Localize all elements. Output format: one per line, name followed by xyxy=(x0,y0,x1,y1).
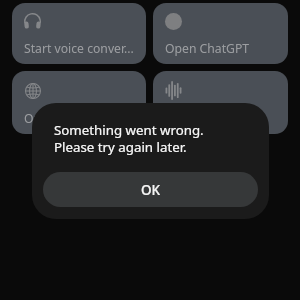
other: Headphones xyxy=(24,13,41,30)
other: App icon xyxy=(165,13,182,30)
button[interactable]: OK xyxy=(43,172,258,207)
staticText: Open ChatGPT xyxy=(165,40,250,57)
staticText: Start voice conver... xyxy=(24,40,134,57)
staticText: OK xyxy=(141,181,161,199)
button[interactable]: App icon xyxy=(153,3,288,64)
staticText: Open web xyxy=(24,110,83,127)
button[interactable]: Headphones xyxy=(12,3,146,64)
staticText: Something went wrong. Please try again l… xyxy=(54,121,204,156)
button[interactable]: Voice input xyxy=(153,71,288,134)
other: Globe xyxy=(25,83,41,99)
other: Voice input xyxy=(165,82,182,99)
button[interactable]: Globe xyxy=(12,71,146,134)
